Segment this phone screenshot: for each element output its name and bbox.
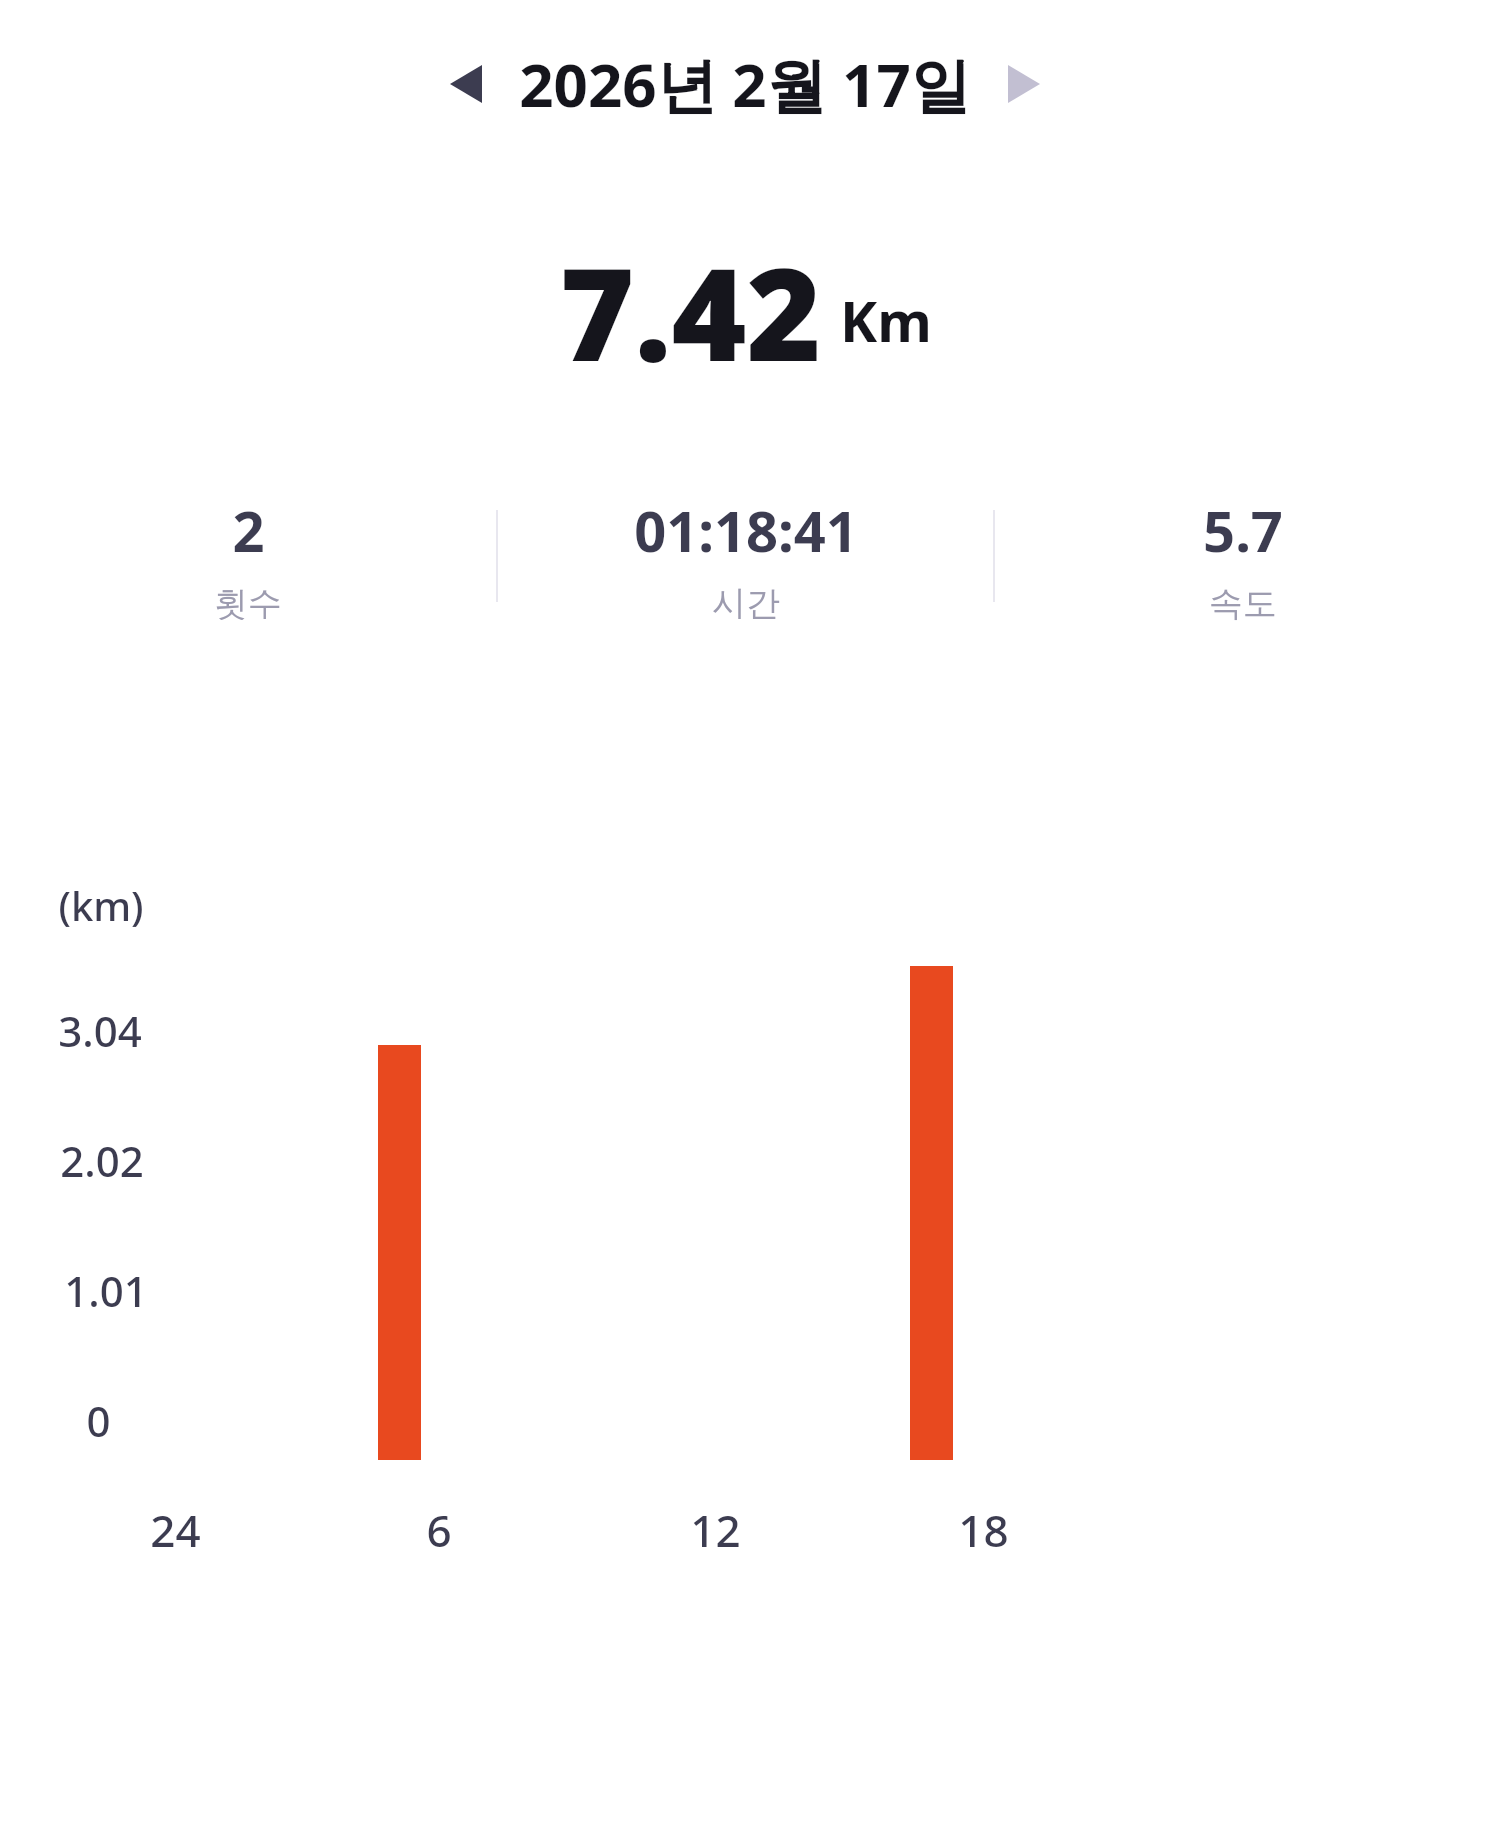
staticText: 2026년 2월 17일	[519, 43, 971, 125]
staticText: 12	[690, 1500, 741, 1560]
staticText: 5.7	[1203, 492, 1283, 568]
staticText: 2	[232, 492, 265, 568]
staticText: 3.04	[58, 1002, 142, 1059]
staticText: 0	[86, 1392, 111, 1449]
button[interactable]: 5.7	[995, 492, 1490, 625]
staticText: 6	[426, 1500, 452, 1560]
button[interactable]: 01:18:41	[498, 492, 993, 625]
staticText: 1.01	[64, 1262, 148, 1319]
staticText: 18	[958, 1500, 1009, 1560]
button[interactable]: 2	[0, 492, 496, 625]
staticText: 7.42	[559, 224, 822, 374]
staticText: 시간	[712, 582, 780, 625]
staticText: 2.02	[60, 1132, 144, 1189]
staticText: 횟수	[214, 582, 282, 625]
staticText: 24	[150, 1500, 201, 1560]
staticText: (km)	[58, 878, 144, 932]
staticText: 01:18:41	[634, 492, 858, 568]
staticText: Km	[840, 282, 932, 358]
button[interactable]: Previous day	[429, 42, 503, 126]
button[interactable]: Next day	[987, 42, 1061, 126]
staticText: 속도	[1209, 582, 1277, 625]
